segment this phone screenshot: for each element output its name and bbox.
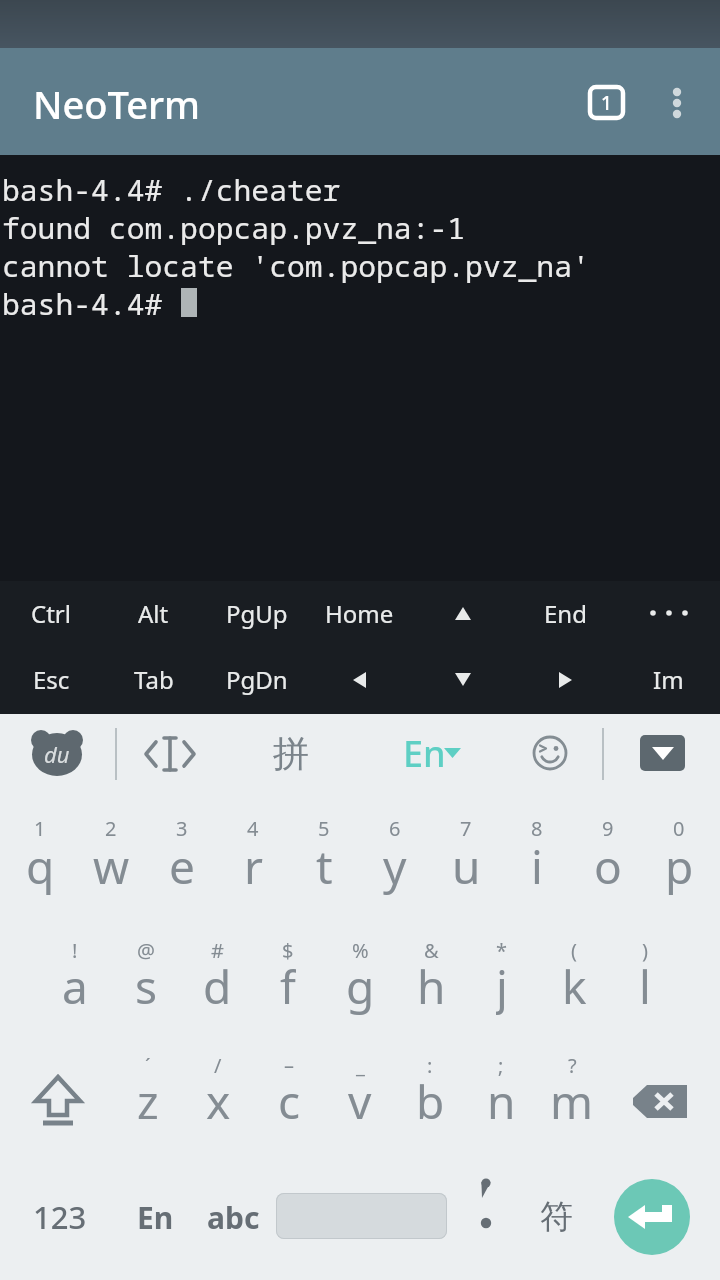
button[interactable]: ! [39, 924, 111, 1042]
staticText: ? [568, 1052, 577, 1079]
button[interactable]: En [118, 1186, 192, 1248]
button[interactable]: _ [324, 1042, 396, 1160]
button[interactable]: 0 [643, 806, 715, 924]
staticText: End [544, 597, 587, 630]
staticText: found com.popcap.pvz_na:-1 [2, 207, 466, 245]
button[interactable]: 2 [75, 806, 147, 924]
button[interactable]: / [182, 1042, 254, 1160]
button[interactable]: – [253, 1042, 325, 1160]
staticText: 1 [601, 90, 612, 116]
button[interactable]: & [395, 924, 467, 1042]
button[interactable] [640, 735, 685, 771]
button[interactable] [308, 645, 411, 714]
staticText: ! [72, 937, 78, 964]
button[interactable] [617, 581, 720, 645]
staticText: 5 [318, 815, 330, 842]
button[interactable]: du [30, 728, 84, 778]
staticText: c [278, 1070, 301, 1130]
staticText: 6 [389, 815, 401, 842]
staticText: @ [137, 937, 155, 964]
button[interactable]: 1 [4, 806, 76, 924]
staticText: g [346, 955, 375, 1015]
staticText: * [496, 937, 508, 964]
staticText: ; [498, 1052, 504, 1079]
staticText: e [169, 835, 195, 895]
button[interactable]: $ [252, 924, 324, 1042]
staticText: abc [207, 1197, 260, 1238]
button[interactable]: ( [538, 924, 610, 1042]
staticText: v [348, 1070, 372, 1130]
button[interactable]: % [324, 924, 396, 1042]
staticText: cannot locate 'com.popcap.pvz_na' [2, 245, 590, 283]
button[interactable]: Esc [0, 645, 102, 714]
button[interactable]: PgUp [205, 581, 308, 645]
button[interactable] [411, 645, 514, 714]
button[interactable]: Im [617, 645, 720, 714]
button[interactable] [144, 732, 196, 776]
button[interactable] [276, 1193, 447, 1239]
staticText: p [665, 835, 694, 895]
button[interactable]: ? [536, 1042, 608, 1160]
staticText: ) [642, 937, 648, 964]
staticText: o [594, 835, 622, 895]
staticText: j [496, 955, 508, 1015]
button[interactable]: ´ [112, 1042, 184, 1160]
staticText: a [62, 955, 88, 1015]
staticText: – [284, 1052, 294, 1079]
staticText: y [383, 835, 407, 895]
staticText: En [403, 729, 446, 775]
staticText: 0 [673, 815, 685, 842]
button[interactable]: 6 [359, 806, 431, 924]
button[interactable]: ) [609, 924, 681, 1042]
staticText: ´ [145, 1052, 151, 1079]
button[interactable]: En [396, 730, 466, 776]
staticText: h [417, 955, 446, 1015]
staticText: x [206, 1070, 231, 1130]
staticText: 1 [34, 815, 46, 842]
staticText: m [550, 1070, 594, 1130]
button[interactable]: 8 [501, 806, 573, 924]
staticText: Alt [138, 597, 169, 630]
staticText: 7 [460, 815, 472, 842]
staticText: l [639, 955, 651, 1015]
button[interactable]: 3 [146, 806, 218, 924]
staticText: 8 [531, 815, 543, 842]
button[interactable]: 123 [20, 1186, 100, 1248]
button[interactable]: Tab [102, 645, 205, 714]
button[interactable]: PgDn [205, 645, 308, 714]
button[interactable]: Ctrl [0, 581, 102, 645]
staticText: du [44, 739, 70, 769]
staticText: 2 [105, 815, 117, 842]
button[interactable] [20, 1062, 96, 1140]
staticText: r [244, 835, 263, 895]
button[interactable]: ; [465, 1042, 537, 1160]
staticText: / [214, 1052, 222, 1079]
button[interactable] [411, 581, 514, 645]
button[interactable]: 拼 [268, 730, 314, 776]
button[interactable]: : [394, 1042, 466, 1160]
button[interactable]: 9 [572, 806, 644, 924]
button[interactable]: * [466, 924, 538, 1042]
button[interactable]: 4 [217, 806, 289, 924]
button[interactable] [456, 1170, 516, 1270]
button[interactable]: 5 [288, 806, 360, 924]
button[interactable]: 符 [526, 1186, 586, 1248]
button[interactable]: Alt [102, 581, 205, 645]
button[interactable]: 1 [588, 85, 625, 120]
button[interactable] [527, 730, 573, 776]
staticText: ( [571, 937, 577, 964]
staticText: b [416, 1070, 445, 1130]
button[interactable]: Home [308, 581, 411, 645]
staticText: Ctrl [31, 597, 71, 630]
button[interactable]: # [181, 924, 253, 1042]
button[interactable]: 7 [430, 806, 502, 924]
button[interactable] [660, 85, 694, 120]
button[interactable]: End [514, 581, 617, 645]
button[interactable] [614, 1179, 690, 1255]
button[interactable] [514, 645, 617, 714]
button[interactable]: @ [110, 924, 182, 1042]
staticText: d [203, 955, 232, 1015]
staticText: u [452, 835, 481, 895]
button[interactable] [620, 1062, 700, 1140]
button[interactable]: abc [196, 1186, 270, 1248]
